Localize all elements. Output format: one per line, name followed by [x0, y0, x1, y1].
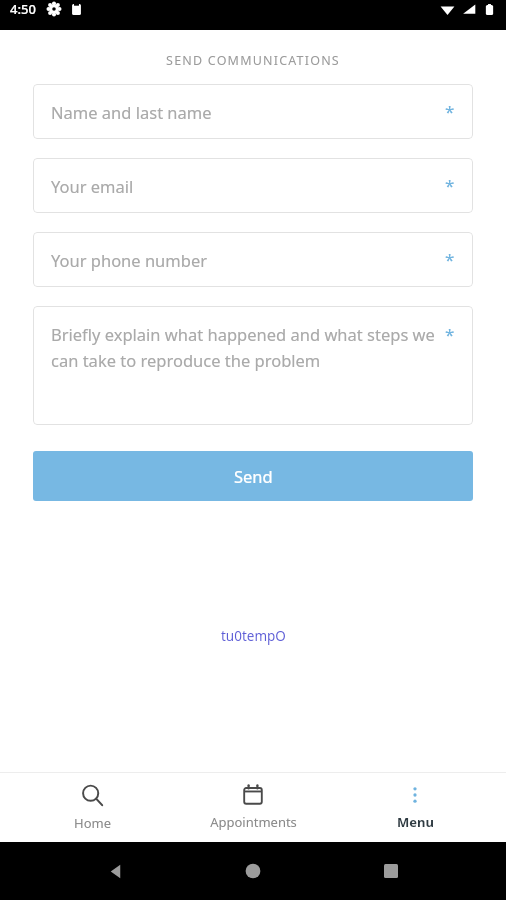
button[interactable]: Appointments — [183, 778, 323, 837]
staticText: Menu — [397, 813, 434, 831]
button[interactable]: Your email — [33, 158, 473, 213]
button[interactable]: Back — [94, 849, 138, 893]
button[interactable]: Recent apps — [369, 849, 413, 893]
staticText: * — [445, 100, 455, 123]
button[interactable]: Menu — [345, 778, 485, 837]
staticText: Name and last name — [51, 101, 445, 123]
staticText: Home — [74, 814, 111, 832]
button[interactable]: Briefly explain what happened and what s… — [33, 306, 473, 425]
staticText: tu0tempO — [221, 627, 286, 645]
staticText: 4:50 — [10, 0, 36, 18]
staticText: * — [445, 174, 455, 197]
staticText: Your phone number — [51, 249, 445, 271]
staticText: * — [445, 323, 455, 346]
staticText: Send — [234, 465, 273, 487]
button[interactable]: Your phone number — [33, 232, 473, 287]
button[interactable]: Home — [22, 778, 162, 838]
button[interactable]: tu0tempO — [221, 627, 286, 645]
staticText: * — [445, 248, 455, 271]
button[interactable]: Name and last name — [33, 84, 473, 139]
button[interactable]: Send — [33, 451, 473, 501]
staticText: Your email — [51, 175, 445, 197]
button[interactable]: Home — [231, 849, 275, 893]
staticText: SEND COMMUNICATIONS — [166, 52, 340, 69]
staticText: Appointments — [210, 813, 297, 831]
staticText: Briefly explain what happened and what s… — [51, 323, 439, 372]
